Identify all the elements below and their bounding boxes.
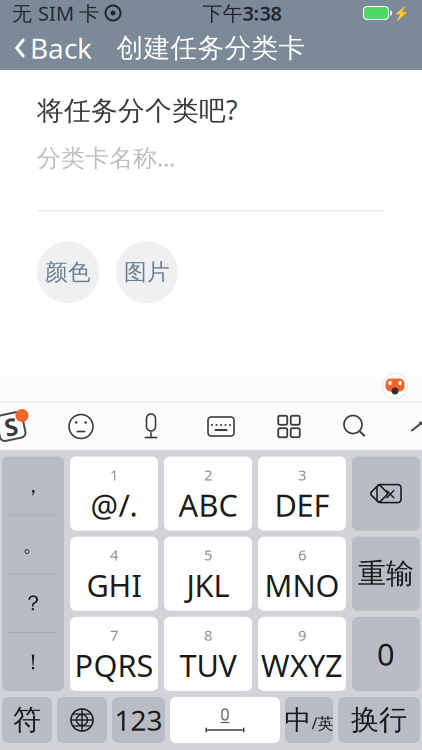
staticText: 换行	[351, 703, 407, 737]
staticText: 1	[110, 465, 118, 484]
button[interactable]: 4	[70, 537, 158, 611]
button[interactable]: 0	[352, 617, 420, 691]
button[interactable]: 空格	[170, 697, 280, 743]
button[interactable]: 2	[164, 456, 252, 531]
staticText: ABC	[178, 484, 237, 525]
staticText: GHI	[86, 565, 141, 605]
staticText: 分类卡名称...	[37, 141, 175, 173]
staticText: 重输	[358, 557, 414, 591]
staticText: WXYZ	[261, 645, 343, 685]
staticText: 8	[204, 625, 212, 645]
button[interactable]: Back	[0, 23, 92, 73]
button[interactable]: 语音输入	[116, 405, 186, 447]
button[interactable]: 9	[258, 617, 346, 691]
staticText: 。	[22, 531, 43, 557]
button[interactable]: 8	[164, 617, 252, 691]
button[interactable]: 中	[285, 697, 333, 743]
button[interactable]: ×	[352, 456, 420, 531]
staticText: 0	[377, 634, 395, 674]
staticText: 将任务分个类吧?	[37, 92, 238, 127]
staticText: 中	[284, 704, 311, 736]
staticText: ？	[22, 590, 43, 616]
staticText: PQRS	[74, 645, 153, 685]
staticText: 颜色	[45, 258, 91, 286]
button[interactable]: 3	[258, 456, 346, 531]
button[interactable]: ，	[2, 456, 64, 514]
button[interactable]: 键盘设置	[186, 405, 256, 447]
button[interactable]: 123	[112, 697, 165, 743]
staticText: ，	[22, 472, 43, 498]
button[interactable]: 5	[164, 537, 252, 611]
staticText: ！	[22, 649, 43, 675]
staticText: 无 SIM 卡	[12, 0, 99, 26]
staticText: 7	[110, 625, 118, 645]
button[interactable]: 重输	[352, 537, 420, 611]
staticText: 123	[114, 701, 162, 739]
staticText: ×	[384, 480, 395, 507]
button[interactable]: 输入法助手	[382, 373, 422, 399]
staticText: 符	[13, 703, 41, 737]
button[interactable]: 换行	[338, 697, 420, 743]
button[interactable]: ！	[2, 633, 64, 691]
staticText: TUV	[179, 645, 236, 685]
button[interactable]: 表情	[46, 405, 116, 447]
button[interactable]: 7	[70, 617, 158, 691]
staticText: JKL	[186, 565, 229, 605]
staticText: 图片	[124, 258, 170, 286]
staticText: @/.	[90, 484, 137, 525]
staticText: MNO	[264, 565, 339, 605]
button[interactable]	[57, 697, 107, 743]
staticText: DEF	[274, 484, 329, 525]
staticText: 9	[298, 625, 306, 645]
button[interactable]: 搜索	[322, 405, 388, 447]
staticText: 创建任务分类卡	[116, 32, 305, 64]
button[interactable]: 收起键盘	[396, 405, 422, 447]
staticText: 3	[298, 465, 306, 484]
button[interactable]: 1	[70, 456, 158, 531]
staticText: 2	[204, 465, 212, 484]
button[interactable]: 符	[2, 697, 52, 743]
button[interactable]: 图片	[116, 241, 178, 303]
button[interactable]: ？	[2, 574, 64, 632]
staticText: S	[4, 411, 17, 442]
staticText: 下午3:38	[202, 0, 281, 26]
staticText: ⚡	[393, 5, 410, 21]
staticText: /英	[311, 712, 333, 734]
staticText: 5	[204, 545, 212, 565]
button[interactable]: 搜狗输入法	[0, 405, 46, 447]
staticText: 6	[298, 545, 306, 565]
button[interactable]: 颜色	[37, 241, 99, 303]
button[interactable]: 。	[2, 515, 64, 573]
button[interactable]: 更多功能	[256, 405, 322, 447]
button[interactable]: 6	[258, 537, 346, 611]
staticText: Back	[30, 29, 92, 67]
staticText: 4	[110, 545, 118, 565]
